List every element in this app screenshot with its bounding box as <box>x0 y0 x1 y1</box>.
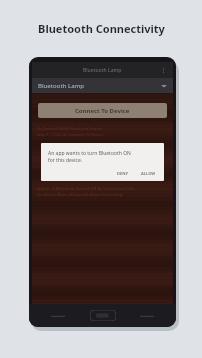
button[interactable]: Connect To Device <box>38 103 167 118</box>
staticText: DENY <box>117 171 128 176</box>
button[interactable]: More options <box>159 66 168 75</box>
staticText: Bluetooth Lamp <box>38 82 85 90</box>
button[interactable]: DENY <box>115 170 130 177</box>
staticText: Bluetooth Lamp <box>83 67 122 74</box>
button[interactable]: Bluetooth Lamp <box>32 78 173 93</box>
staticText: for this device. <box>48 157 83 164</box>
staticText: On Device Name Allowed & Allow Something <box>37 192 123 197</box>
staticText: To Connect With Bluetooth Device <box>37 126 102 131</box>
staticText: ALLOW <box>141 171 156 176</box>
button[interactable]: ALLOW <box>139 170 158 177</box>
button[interactable]: Back <box>140 313 154 319</box>
button[interactable]: Home <box>90 310 116 321</box>
staticText: Bluetooth Connectivity <box>38 21 165 36</box>
staticText: Step 2 : If Bluetooth Turned Off By Devi… <box>37 186 134 191</box>
staticText: Connect To Device <box>75 107 130 115</box>
staticText: Step 1 : Click On Connect To Device <box>37 132 104 137</box>
staticText: An app wants to turn Bluetooth ON <box>48 150 131 157</box>
button[interactable]: Recents <box>51 313 65 319</box>
